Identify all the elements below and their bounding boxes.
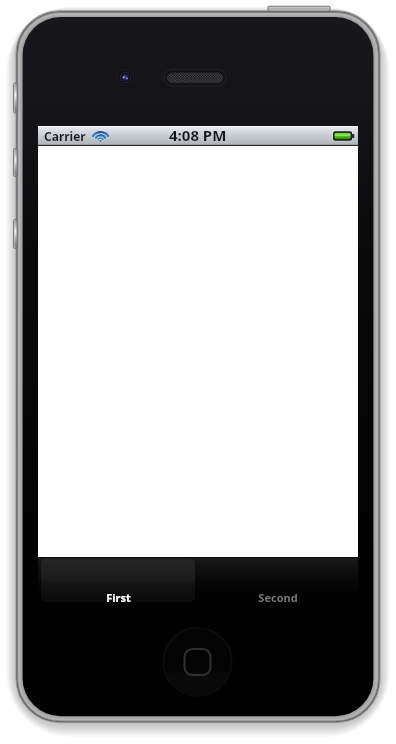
button[interactable]: Home xyxy=(164,628,232,696)
staticText: Carrier xyxy=(44,128,86,144)
button[interactable]: Power xyxy=(268,2,330,14)
button[interactable]: Second xyxy=(198,557,358,604)
staticText: Second xyxy=(258,590,298,605)
staticText: 4:08 PM xyxy=(169,125,227,145)
button[interactable]: First xyxy=(38,557,198,604)
staticText: First xyxy=(106,590,131,605)
